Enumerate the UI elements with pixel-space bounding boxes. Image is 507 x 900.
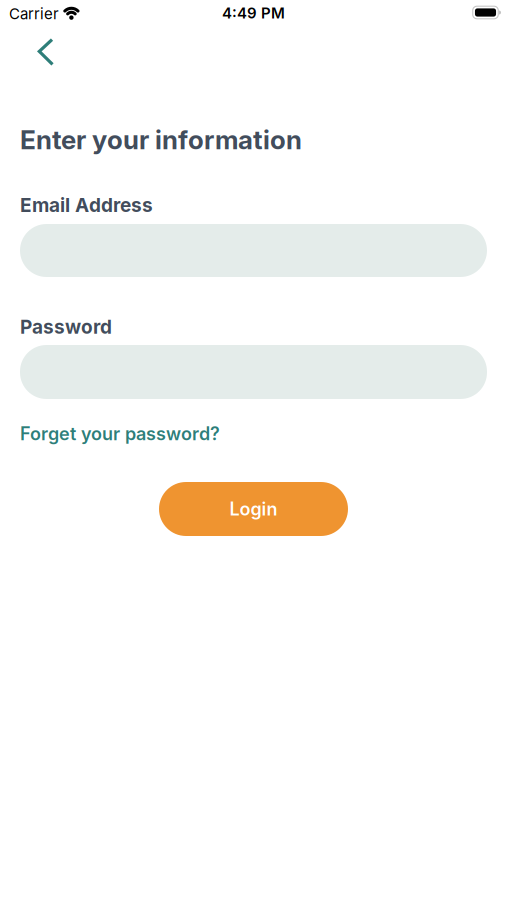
staticText: Carrier: [9, 5, 59, 23]
staticText: 4:49 PM: [222, 4, 285, 22]
staticText: Enter your information: [20, 124, 302, 156]
staticText: Password: [20, 315, 112, 338]
staticText: Email Address: [20, 194, 153, 217]
button[interactable]: Login: [159, 482, 348, 536]
button[interactable]: [0, 28, 79, 74]
button[interactable]: Forget your password?: [20, 423, 220, 444]
staticText: Forget your password?: [20, 423, 220, 444]
staticText: Login: [229, 498, 277, 520]
button[interactable]: [20, 224, 487, 277]
button[interactable]: [20, 345, 487, 399]
